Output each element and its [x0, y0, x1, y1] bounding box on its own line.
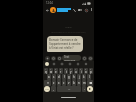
button[interactable]: 7: [74, 68, 78, 74]
button[interactable]: Stickers: [50, 55, 56, 61]
staticText: g: [68, 75, 70, 79]
button[interactable]: 5: [64, 68, 68, 74]
staticText: m: [83, 81, 86, 85]
staticText: t: [66, 70, 67, 74]
button[interactable]: Space: [57, 86, 81, 92]
button[interactable]: 6: [69, 68, 73, 74]
staticText: 1: [45, 68, 47, 71]
staticText: n: [78, 81, 80, 85]
button[interactable]: Emoji: [81, 55, 87, 61]
button[interactable]: x: [57, 80, 61, 86]
button[interactable]: 0: [89, 68, 93, 74]
staticText: i: [81, 70, 82, 74]
staticText: d: [58, 75, 60, 79]
staticText: p: [90, 70, 92, 74]
staticText: ,: [53, 87, 54, 91]
staticText: y: [70, 70, 72, 74]
button[interactable]: ,: [51, 86, 56, 92]
button[interactable]: b: [72, 80, 76, 86]
staticText: 0: [90, 68, 92, 71]
staticText: h: [73, 75, 75, 79]
button[interactable]: z: [52, 80, 56, 86]
staticText: ?123: [45, 88, 49, 90]
button[interactable]: Clipboard: [76, 62, 80, 66]
staticText: j: [79, 75, 80, 79]
staticText: 6: [70, 68, 72, 71]
button[interactable]: c: [62, 80, 66, 86]
staticText: u: [75, 70, 77, 74]
button[interactable]: Contact name: [57, 8, 71, 12]
button[interactable]: Back: [44, 7, 50, 13]
button[interactable]: 9: [84, 68, 88, 74]
button[interactable]: Video call: [77, 7, 83, 13]
button[interactable]: k: [82, 74, 86, 80]
button[interactable]: Backspace: [87, 80, 93, 86]
staticText: Text message: [64, 55, 79, 61]
button[interactable]: Contact photo: [50, 7, 56, 13]
button[interactable]: a: [47, 74, 51, 80]
staticText: 9: [85, 68, 87, 71]
staticText: c: [63, 81, 65, 85]
button[interactable]: Themes: [52, 62, 56, 66]
button[interactable]: f: [62, 74, 66, 80]
button[interactable]: Add: [44, 55, 50, 61]
button[interactable]: Google: [45, 62, 49, 66]
staticText: w: [50, 70, 53, 74]
staticText: f: [64, 75, 65, 79]
button[interactable]: m: [82, 80, 86, 86]
button[interactable]: h: [72, 74, 76, 80]
button[interactable]: 4: [59, 68, 63, 74]
staticText: o: [85, 70, 87, 74]
button[interactable]: .: [82, 86, 86, 92]
button[interactable]: 2: [49, 68, 53, 74]
staticText: r: [60, 70, 62, 74]
button[interactable]: Shift: [44, 80, 51, 86]
button[interactable]: Gallery: [56, 55, 62, 61]
staticText: b: [73, 81, 75, 85]
button[interactable]: n: [77, 80, 81, 86]
button[interactable]: Settings: [84, 62, 88, 66]
staticText: Texting with 06 12 34 56 78 (SMS/MMS): [47, 31, 90, 34]
staticText: .: [84, 87, 85, 91]
staticText: 7: [75, 68, 77, 71]
button[interactable]: v: [67, 80, 71, 86]
staticText: v: [68, 81, 70, 85]
button[interactable]: s: [52, 74, 56, 80]
staticText: Today: [47, 25, 90, 28]
staticText: 4: [60, 68, 62, 71]
staticText: q: [45, 70, 47, 74]
staticText: 3: [55, 68, 57, 71]
staticText: k: [83, 75, 85, 79]
button[interactable]: 1: [44, 68, 48, 74]
staticText: s: [53, 75, 55, 79]
staticText: 2: [50, 68, 52, 71]
button[interactable]: l: [87, 74, 91, 80]
button[interactable]: g: [67, 74, 71, 80]
staticText: z: [53, 81, 55, 85]
button[interactable]: Call: [71, 7, 77, 13]
staticText: 12:04: [46, 1, 53, 5]
staticText: Bonsoir l'annonce de l'appartement à ven…: [49, 38, 81, 50]
button[interactable]: GIF: [60, 62, 64, 66]
staticText: 5: [65, 68, 67, 71]
button[interactable]: More options: [89, 7, 93, 12]
button[interactable]: 8: [79, 68, 83, 74]
button[interactable]: Block: [83, 7, 89, 13]
staticText: x: [58, 81, 60, 85]
button[interactable]: Text message: [62, 55, 81, 61]
button[interactable]: 3: [54, 68, 58, 74]
staticText: a: [48, 75, 50, 79]
staticText: 8: [80, 68, 82, 71]
staticText: l: [89, 75, 90, 79]
button[interactable]: d: [57, 74, 61, 80]
staticText: e: [55, 70, 57, 74]
button[interactable]: Send: [87, 86, 93, 92]
button[interactable]: Bonsoir l'annonce de l'appartement à ven…: [47, 36, 83, 52]
button[interactable]: j: [77, 74, 81, 80]
button[interactable]: Stickers: [68, 62, 72, 66]
button[interactable]: Camera: [87, 55, 93, 61]
staticText: FR: [68, 88, 71, 91]
button[interactable]: Symbols: [44, 86, 50, 92]
